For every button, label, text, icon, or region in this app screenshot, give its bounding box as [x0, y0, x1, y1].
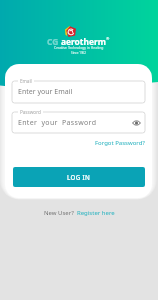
staticText: Enter your Email: [18, 87, 73, 97]
staticText: aerotherm: [61, 36, 106, 47]
staticText: Forgot Password?: [95, 139, 145, 147]
staticText: New User?: [44, 209, 77, 217]
staticText: Email: [20, 78, 32, 84]
button[interactable]: Toggle password visibility: [131, 118, 141, 128]
button[interactable]: LOG IN: [13, 167, 145, 187]
staticText: Creative Technology in Heating: [54, 45, 104, 50]
staticText: Password: [20, 109, 41, 115]
staticText: CG: [47, 36, 61, 47]
staticText: Enter your Password: [18, 118, 97, 128]
staticText: LOG IN: [67, 173, 91, 181]
button[interactable]: Forgot Password?: [93, 137, 147, 149]
staticText: Register here: [77, 209, 115, 217]
button[interactable]: Register here: [77, 209, 115, 217]
staticText: Since 1962: [71, 51, 87, 55]
staticText: ®: [106, 36, 110, 41]
